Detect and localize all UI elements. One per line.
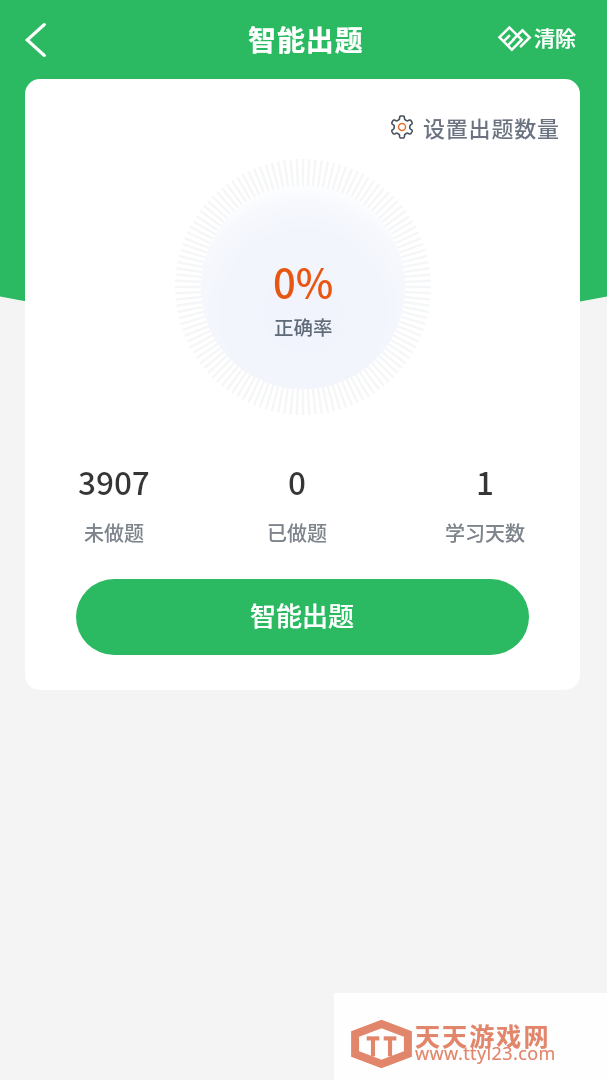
- staticText: 正确率: [274, 312, 333, 340]
- staticText: 0: [288, 458, 306, 504]
- staticText: 3907: [78, 458, 150, 504]
- staticText: 清除: [534, 22, 576, 52]
- staticText: 智能出题: [248, 19, 364, 60]
- staticText: 未做题: [84, 518, 144, 547]
- staticText: 0%: [273, 252, 334, 310]
- staticText: www.ttyl23.com: [415, 1041, 556, 1066]
- staticText: 天天游戏网: [415, 1017, 551, 1053]
- button[interactable]: 0: [207, 458, 387, 547]
- staticText: 设置出题数量: [423, 111, 560, 143]
- staticText: 已做题: [267, 518, 327, 547]
- button[interactable]: Back: [10, 14, 62, 66]
- staticText: 智能出题: [250, 596, 355, 634]
- staticText: 1: [476, 458, 494, 504]
- button[interactable]: 清除: [502, 22, 576, 52]
- button[interactable]: 1: [395, 458, 575, 547]
- staticText: 学习天数: [445, 518, 525, 547]
- button[interactable]: 智能出题: [76, 579, 529, 655]
- button[interactable]: 设置出题数量: [385, 109, 564, 145]
- button[interactable]: 3907: [25, 458, 204, 547]
